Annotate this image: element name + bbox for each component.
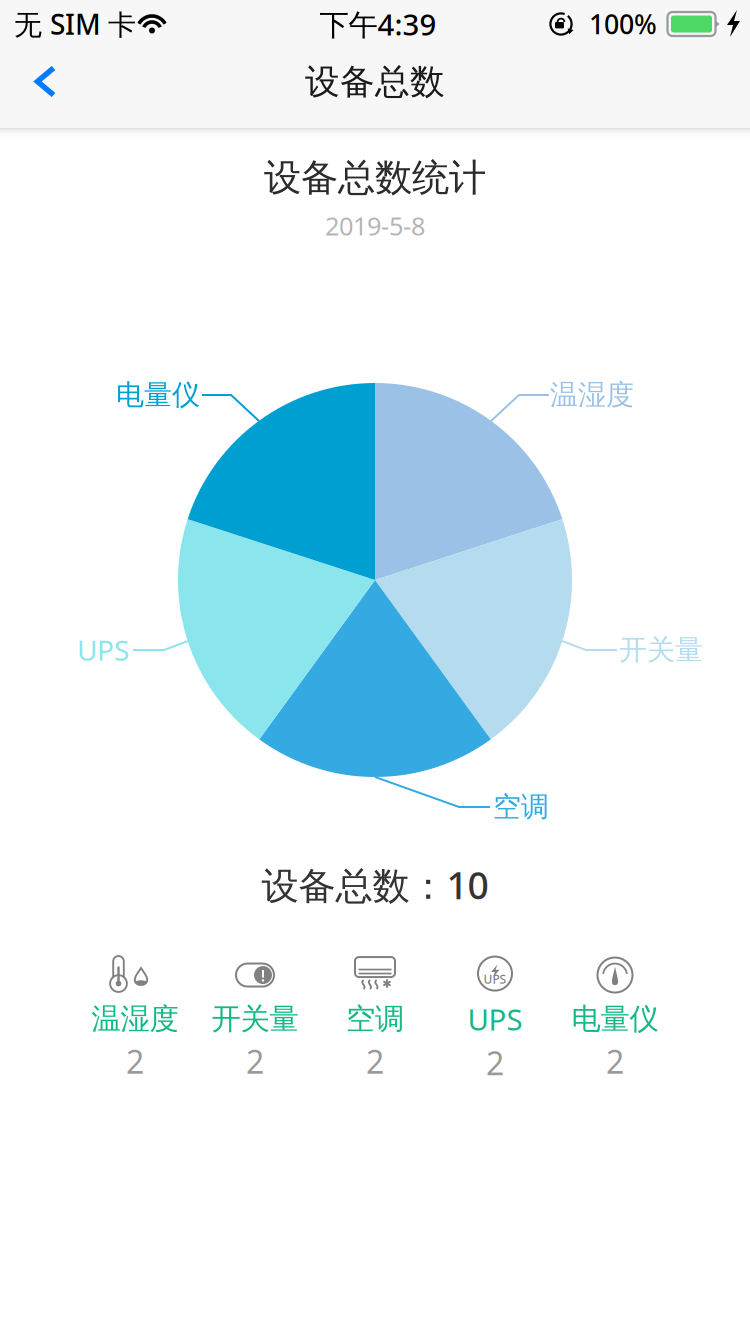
- button[interactable]: 温湿度: [75, 947, 195, 1082]
- staticText: 2: [246, 1040, 264, 1083]
- button[interactable]: UPS: [435, 946, 555, 1084]
- staticText: 空调: [346, 1001, 404, 1037]
- staticText: 温湿度: [550, 378, 634, 412]
- button[interactable]: Back: [0, 55, 81, 121]
- staticText: 2: [606, 1040, 624, 1083]
- staticText: UPS: [77, 631, 129, 669]
- staticText: 开关量: [619, 633, 703, 667]
- button[interactable]: 空调: [315, 947, 435, 1082]
- staticText: 电量仪: [116, 378, 200, 412]
- button[interactable]: 开关量: [195, 947, 315, 1082]
- staticText: 开关量: [211, 1001, 298, 1037]
- staticText: 无 SIM 卡: [14, 5, 136, 43]
- button[interactable]: 电量仪: [555, 947, 675, 1082]
- staticText: 空调: [493, 790, 549, 824]
- staticText: UPS: [467, 1000, 522, 1039]
- staticText: 设备总数统计: [264, 155, 486, 201]
- staticText: 2: [126, 1040, 144, 1083]
- staticText: 100%: [589, 6, 657, 42]
- staticText: 2019-5-8: [325, 209, 425, 242]
- staticText: 电量仪: [571, 1001, 658, 1037]
- staticText: 2: [366, 1040, 384, 1083]
- staticText: 温湿度: [91, 1001, 178, 1037]
- staticText: 设备总数: [305, 61, 445, 103]
- staticText: 下午4:39: [319, 4, 436, 43]
- staticText: 设备总数：10: [261, 860, 488, 910]
- staticText: 2: [486, 1041, 504, 1084]
- staticText: UPS: [483, 971, 506, 987]
